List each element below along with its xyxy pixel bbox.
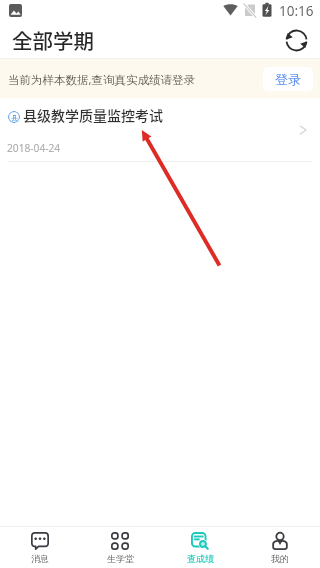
button[interactable]: 县 xyxy=(0,98,320,162)
staticText: 我的 xyxy=(271,553,289,564)
button[interactable]: 查成绩 xyxy=(160,527,240,568)
staticText: 当前为样本数据,查询真实成绩请登录 xyxy=(8,72,196,88)
staticText: 2018-04-24 xyxy=(7,141,61,155)
staticText: 消息 xyxy=(31,553,49,564)
staticText: 登录 xyxy=(275,71,301,87)
staticText: 全部学期 xyxy=(12,25,94,55)
button[interactable]: 我的 xyxy=(240,527,320,568)
staticText: 县级教学质量监控考试 xyxy=(23,105,163,125)
staticText: 生学堂 xyxy=(107,553,134,564)
button[interactable]: 登录 xyxy=(263,67,313,91)
staticText: 县 xyxy=(11,113,18,122)
button[interactable]: 生学堂 xyxy=(80,527,160,568)
button[interactable]: 消息 xyxy=(0,527,80,568)
button[interactable]: Refresh xyxy=(281,25,311,55)
staticText: 查成绩 xyxy=(187,553,214,564)
staticText: 10:16 xyxy=(279,2,314,20)
